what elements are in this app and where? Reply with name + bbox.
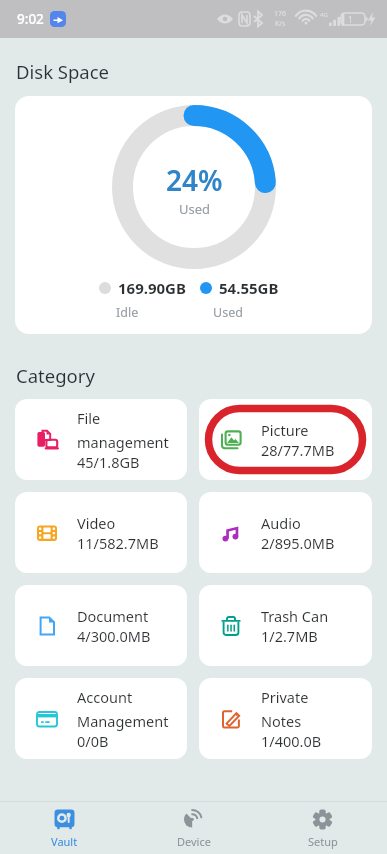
staticText: Category <box>16 363 95 388</box>
staticText: Picture <box>261 420 309 440</box>
staticText: Document <box>77 606 149 626</box>
button[interactable]: Device <box>129 808 258 849</box>
button[interactable]: Account Management <box>15 678 187 759</box>
staticText: Disk Space <box>16 59 110 84</box>
button[interactable]: Document <box>15 585 187 666</box>
staticText: 54.55GB <box>219 278 279 298</box>
staticText: 28/77.7MB <box>261 440 335 460</box>
button[interactable]: Private Notes <box>199 678 372 759</box>
button[interactable]: Picture <box>199 399 372 480</box>
button[interactable]: Vault <box>0 808 129 849</box>
staticText: Device <box>177 834 211 849</box>
staticText: Vault <box>51 834 78 849</box>
staticText: 2/895.0MB <box>261 533 335 553</box>
staticText: Account Management <box>77 687 169 731</box>
staticText: 1/400.0B <box>261 731 322 751</box>
button[interactable]: File management <box>15 399 187 480</box>
staticText: 1 <box>348 14 353 25</box>
staticText: 24% <box>166 161 223 199</box>
staticText: K/s <box>275 19 286 29</box>
staticText: Audio <box>261 513 301 533</box>
staticText: File management <box>77 408 169 452</box>
staticText: Idle <box>116 304 139 321</box>
button[interactable]: Setup <box>258 808 387 849</box>
staticText: 4G <box>320 11 328 19</box>
button[interactable]: Trash Can <box>199 585 372 666</box>
button[interactable]: Video <box>15 492 187 573</box>
staticText: 4/300.0MB <box>77 626 151 646</box>
button[interactable]: Audio <box>199 492 372 573</box>
staticText: Private Notes <box>261 687 309 731</box>
staticText: 9:02 <box>17 10 44 28</box>
staticText: Used <box>179 200 211 218</box>
staticText: 45/1.8GB <box>77 452 140 472</box>
staticText: 169.90GB <box>118 278 186 298</box>
staticText: 176 <box>274 9 287 19</box>
staticText: Used <box>213 304 243 321</box>
staticText: 1/2.7MB <box>261 626 318 646</box>
staticText: 0/0B <box>77 731 109 751</box>
staticText: Trash Can <box>261 606 329 626</box>
staticText: 11/582.7MB <box>77 533 159 553</box>
staticText: Video <box>77 513 116 533</box>
staticText: Setup <box>308 834 338 849</box>
